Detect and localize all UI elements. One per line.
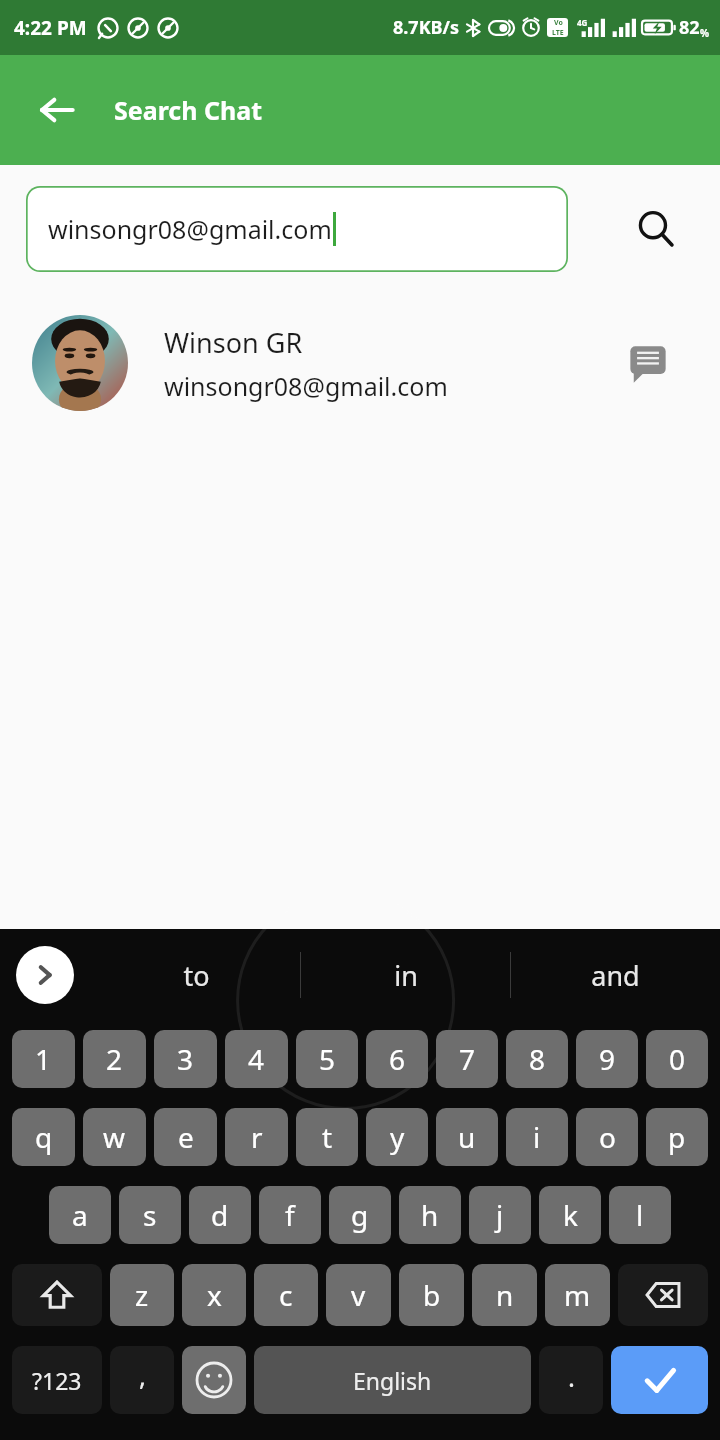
button[interactable]: h (399, 1186, 461, 1244)
button[interactable]: Chat (620, 335, 676, 391)
button[interactable]: 0 (646, 1030, 708, 1088)
staticText: to (183, 957, 210, 994)
staticText: z (135, 1276, 149, 1314)
staticText: o (599, 1118, 616, 1156)
staticText: i (533, 1118, 541, 1156)
staticText: ?123 (32, 1365, 82, 1396)
staticText: d (211, 1196, 229, 1234)
staticText: LTE (552, 28, 564, 37)
staticText: in (394, 957, 418, 994)
staticText: 82 (679, 15, 700, 40)
staticText: x (207, 1276, 222, 1314)
staticText: y (390, 1118, 405, 1156)
button[interactable]: 9 (576, 1030, 638, 1088)
staticText: , (139, 1358, 146, 1393)
staticText: f (285, 1196, 295, 1234)
staticText: h (421, 1196, 439, 1234)
button[interactable]: to (92, 929, 300, 1021)
staticText: 4 (248, 1040, 265, 1078)
staticText: 4G (577, 17, 588, 28)
button[interactable]: s (119, 1186, 181, 1244)
button[interactable]: t (296, 1108, 358, 1166)
button[interactable]: q (12, 1108, 75, 1166)
button[interactable]: Search (628, 201, 684, 257)
button[interactable]: n (472, 1264, 537, 1326)
staticText: 5 (319, 1040, 336, 1078)
button[interactable]: in (301, 929, 510, 1021)
staticText: 1 (35, 1040, 52, 1078)
button[interactable]: c (254, 1264, 318, 1326)
button[interactable]: g (329, 1186, 391, 1244)
button[interactable]: v (326, 1264, 391, 1326)
button[interactable]: r (225, 1108, 288, 1166)
button[interactable]: Shift (12, 1264, 102, 1326)
staticText: l (636, 1196, 644, 1234)
staticText: . (568, 1359, 575, 1394)
button[interactable]: b (399, 1264, 464, 1326)
button[interactable]: ?123 (12, 1346, 102, 1414)
button[interactable]: 8 (506, 1030, 568, 1088)
button[interactable]: e (154, 1108, 217, 1166)
staticText: 6 (389, 1040, 406, 1078)
staticText: 0 (669, 1040, 686, 1078)
staticText: Search Chat (114, 93, 263, 127)
button[interactable]: o (576, 1108, 638, 1166)
staticText: r (251, 1118, 263, 1156)
staticText: k (563, 1196, 578, 1234)
staticText: winsongr08@gmail.com (48, 212, 332, 246)
staticText: g (351, 1196, 369, 1234)
staticText: and (591, 957, 640, 994)
button[interactable]: 7 (436, 1030, 498, 1088)
button[interactable]: a (49, 1186, 111, 1244)
button[interactable]: y (366, 1108, 428, 1166)
button[interactable]: d (189, 1186, 251, 1244)
button[interactable]: 5 (296, 1030, 358, 1088)
button[interactable]: 3 (154, 1030, 217, 1088)
button[interactable]: 1 (12, 1030, 75, 1088)
button[interactable]: 6 (366, 1030, 428, 1088)
button[interactable]: w (83, 1108, 146, 1166)
button[interactable]: Enter (611, 1346, 708, 1414)
button[interactable]: English (254, 1346, 531, 1414)
button[interactable]: Winson GR (0, 293, 720, 433)
staticText: p (668, 1118, 686, 1156)
button[interactable]: Back (26, 79, 88, 141)
staticText: 2 (106, 1040, 123, 1078)
staticText: j (496, 1196, 504, 1234)
button[interactable]: 4 (225, 1030, 288, 1088)
staticText: 8 (529, 1040, 546, 1078)
button[interactable]: winsongr08@gmail.com (26, 186, 568, 272)
staticText: b (423, 1276, 441, 1314)
staticText: q (35, 1118, 53, 1156)
button[interactable]: j (469, 1186, 531, 1244)
button[interactable]: f (259, 1186, 321, 1244)
staticText: v (351, 1276, 366, 1314)
button[interactable]: Emoji (182, 1346, 246, 1414)
button[interactable]: m (545, 1264, 610, 1326)
staticText: 7 (459, 1040, 476, 1078)
button[interactable]: Expand suggestions (16, 946, 74, 1004)
button[interactable]: Backspace (618, 1264, 708, 1326)
staticText: m (564, 1276, 591, 1314)
staticText: t (322, 1118, 333, 1156)
button[interactable]: and (511, 929, 720, 1021)
staticText: Vo (554, 18, 563, 28)
staticText: 3 (177, 1040, 194, 1078)
staticText: e (178, 1118, 194, 1156)
button[interactable]: l (609, 1186, 671, 1244)
button[interactable]: 2 (83, 1030, 146, 1088)
staticText: n (496, 1276, 514, 1314)
button[interactable]: . (539, 1346, 603, 1414)
staticText: winsongr08@gmail.com (164, 369, 448, 403)
staticText: s (143, 1196, 157, 1234)
staticText: 8.7KB/s (393, 15, 460, 40)
button[interactable]: i (506, 1108, 568, 1166)
staticText: English (353, 1365, 432, 1396)
button[interactable]: x (182, 1264, 246, 1326)
button[interactable]: z (110, 1264, 174, 1326)
button[interactable]: u (436, 1108, 498, 1166)
button[interactable]: k (539, 1186, 601, 1244)
button[interactable]: p (646, 1108, 708, 1166)
button[interactable]: , (110, 1346, 174, 1414)
staticText: 9 (599, 1040, 616, 1078)
